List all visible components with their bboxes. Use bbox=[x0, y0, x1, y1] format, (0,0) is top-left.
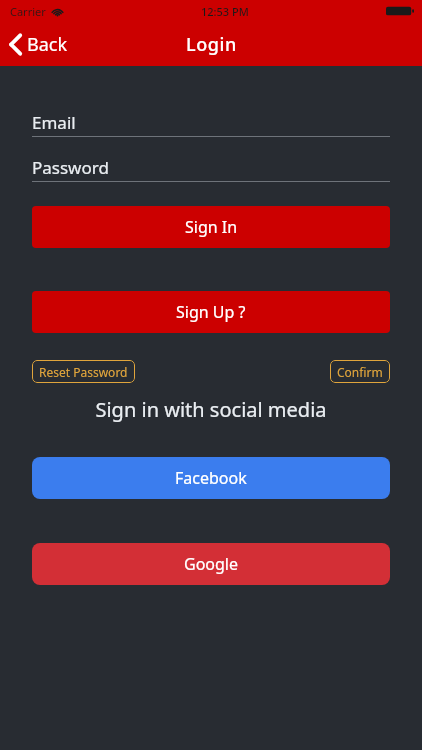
staticText: Confirm bbox=[337, 364, 383, 380]
staticText: Google bbox=[184, 553, 239, 575]
staticText: Sign In bbox=[185, 216, 238, 238]
staticText: 12:53 PM bbox=[201, 4, 249, 19]
staticText: Login bbox=[186, 32, 237, 57]
staticText: Password bbox=[32, 156, 109, 179]
staticText: Sign Up ? bbox=[176, 301, 246, 323]
button[interactable]: Back bbox=[0, 26, 82, 63]
button[interactable]: Google bbox=[32, 543, 390, 585]
staticText: Carrier bbox=[10, 4, 46, 19]
staticText: Facebook bbox=[175, 467, 247, 489]
button[interactable]: Sign In bbox=[32, 206, 390, 248]
button[interactable]: Reset Password bbox=[32, 360, 135, 383]
button[interactable]: Sign Up ? bbox=[32, 291, 390, 333]
button[interactable]: Facebook bbox=[32, 457, 390, 499]
staticText: Reset Password bbox=[39, 364, 128, 380]
staticText: Back bbox=[27, 32, 68, 57]
staticText: Email bbox=[32, 111, 76, 134]
button[interactable]: Password bbox=[32, 153, 390, 181]
staticText: Sign in with social media bbox=[32, 396, 390, 423]
button[interactable]: Confirm bbox=[330, 360, 390, 383]
button[interactable]: Email bbox=[32, 108, 390, 136]
